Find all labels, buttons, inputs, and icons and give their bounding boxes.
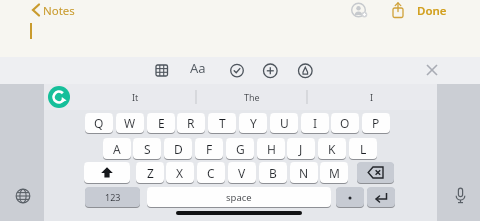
- staticText: D: [174, 141, 183, 157]
- button[interactable]: S: [133, 138, 161, 159]
- button[interactable]: T: [208, 113, 236, 133]
- button[interactable]: A: [103, 138, 131, 159]
- button[interactable]: 123: [85, 187, 140, 207]
- staticText: F: [206, 141, 213, 157]
- button[interactable]: The: [196, 84, 307, 110]
- staticText: O: [340, 115, 350, 131]
- staticText: B: [269, 165, 277, 181]
- button[interactable]: [390, 1, 406, 19]
- button[interactable]: Y: [239, 113, 267, 133]
- button[interactable]: K: [318, 138, 346, 159]
- button[interactable]: [28, 2, 44, 18]
- button[interactable]: P: [362, 113, 390, 133]
- staticText: T: [219, 115, 226, 131]
- staticText: C: [207, 165, 215, 181]
- button[interactable]: [367, 187, 395, 207]
- button[interactable]: [336, 187, 364, 207]
- staticText: H: [267, 141, 276, 157]
- staticText: R: [187, 115, 195, 131]
- button[interactable]: [298, 64, 313, 79]
- button[interactable]: J: [287, 138, 315, 159]
- staticText: I: [313, 115, 318, 131]
- button[interactable]: G: [226, 138, 254, 159]
- staticText: G: [236, 141, 245, 157]
- button[interactable]: V: [228, 162, 256, 183]
- button[interactable]: M: [320, 162, 348, 183]
- button[interactable]: It: [75, 84, 196, 110]
- button[interactable]: [155, 64, 169, 77]
- button[interactable]: I: [301, 113, 329, 133]
- button[interactable]: [424, 62, 440, 78]
- button[interactable]: [230, 64, 244, 78]
- button[interactable]: Q: [85, 113, 113, 133]
- button[interactable]: [263, 64, 278, 79]
- button[interactable]: Done: [417, 3, 447, 19]
- button[interactable]: [48, 86, 70, 108]
- staticText: space: [226, 191, 252, 204]
- button[interactable]: I: [307, 84, 437, 110]
- staticText: U: [280, 115, 289, 131]
- staticText: P: [372, 115, 380, 131]
- button[interactable]: [15, 188, 31, 204]
- button[interactable]: L: [349, 138, 377, 159]
- staticText: The: [244, 91, 260, 103]
- button[interactable]: O: [331, 113, 359, 133]
- staticText: J: [299, 141, 303, 157]
- button[interactable]: R: [177, 113, 205, 133]
- button[interactable]: [453, 187, 468, 205]
- staticText: K: [328, 141, 336, 157]
- staticText: Y: [250, 115, 257, 131]
- button[interactable]: space: [147, 187, 331, 207]
- button[interactable]: Z: [136, 162, 164, 183]
- button[interactable]: E: [147, 113, 175, 133]
- staticText: L: [360, 141, 367, 157]
- button[interactable]: X: [166, 162, 194, 183]
- button[interactable]: Aa: [190, 59, 206, 77]
- staticText: M: [329, 165, 340, 181]
- staticText: A: [113, 141, 121, 157]
- button[interactable]: W: [116, 113, 144, 133]
- button[interactable]: H: [257, 138, 285, 159]
- button[interactable]: N: [290, 162, 318, 183]
- button[interactable]: [357, 162, 394, 183]
- staticText: X: [176, 165, 184, 181]
- button[interactable]: C: [197, 162, 225, 183]
- button[interactable]: D: [164, 138, 192, 159]
- staticText: I: [370, 91, 374, 103]
- staticText: 123: [105, 191, 121, 203]
- staticText: S: [144, 141, 151, 157]
- staticText: W: [124, 115, 136, 131]
- staticText: N: [299, 165, 309, 181]
- staticText: E: [158, 115, 165, 131]
- staticText: Z: [147, 165, 154, 181]
- button[interactable]: F: [195, 138, 223, 159]
- button[interactable]: Notes: [43, 3, 75, 19]
- staticText: V: [238, 165, 246, 181]
- staticText: Q: [94, 115, 104, 131]
- button[interactable]: [84, 162, 130, 183]
- staticText: Aa: [190, 59, 206, 77]
- button[interactable]: B: [259, 162, 287, 183]
- button[interactable]: U: [270, 113, 298, 133]
- staticText: It: [132, 91, 139, 103]
- button[interactable]: [351, 2, 369, 18]
